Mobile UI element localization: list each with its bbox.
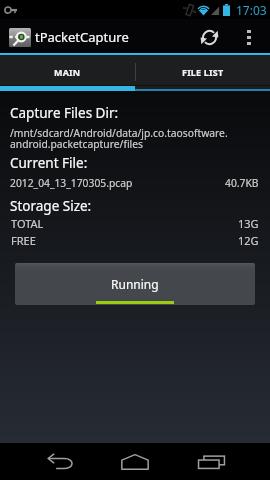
button[interactable]: FILE LIST — [135, 55, 270, 91]
button[interactable]: Refresh — [191, 19, 229, 55]
staticText: /mnt/sdcard/Android/data/jp.co.taosoftwa… — [10, 126, 228, 151]
staticText: 2012_04_13_170305.pcap — [10, 176, 133, 190]
staticText: Capture Files Dir: — [10, 104, 119, 122]
button[interactable]: Home — [118, 446, 152, 477]
staticText: 12G — [238, 233, 259, 248]
staticText: 17:03 — [236, 2, 267, 18]
button[interactable]: Back — [44, 446, 77, 477]
staticText: FILE LIST — [182, 66, 224, 78]
button[interactable]: Running — [15, 263, 255, 305]
staticText: Current File: — [10, 154, 88, 172]
button[interactable]: More options — [229, 19, 268, 55]
button[interactable]: MAIN — [0, 55, 135, 91]
staticText: 13G — [238, 216, 259, 231]
staticText: 40.7KB — [225, 176, 259, 190]
staticText: TOTAL — [11, 216, 44, 231]
staticText: Storage Size: — [10, 197, 92, 215]
staticText: tPacketCapture — [35, 28, 129, 46]
button[interactable]: Recents — [194, 446, 228, 477]
staticText: Running — [111, 276, 159, 292]
staticText: MAIN — [54, 66, 81, 78]
staticText: FREE — [11, 233, 36, 248]
